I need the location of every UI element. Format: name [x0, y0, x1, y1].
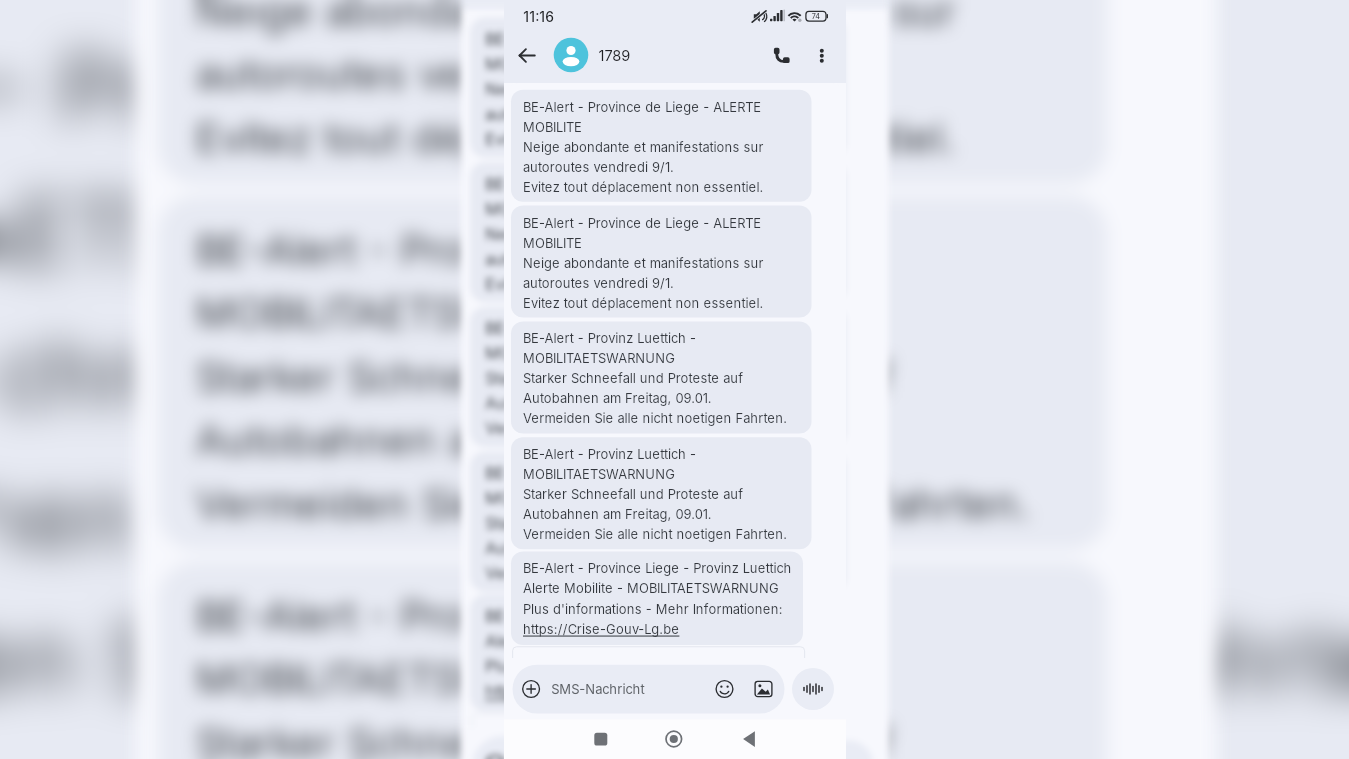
button[interactable]: Record audio message [792, 668, 834, 710]
button[interactable] [512, 664, 784, 713]
button[interactable]: Call 1789 [764, 38, 799, 73]
button[interactable]: Recent apps [582, 721, 618, 757]
button[interactable] [511, 438, 812, 550]
button[interactable]: Back [730, 721, 766, 757]
button[interactable]: More options [804, 38, 839, 73]
button[interactable] [511, 90, 812, 202]
button[interactable] [511, 551, 803, 644]
button[interactable] [549, 36, 749, 76]
button[interactable]: Navigate up [510, 38, 545, 73]
button[interactable] [511, 322, 812, 434]
button[interactable] [511, 206, 812, 318]
button[interactable]: Home [656, 721, 692, 757]
